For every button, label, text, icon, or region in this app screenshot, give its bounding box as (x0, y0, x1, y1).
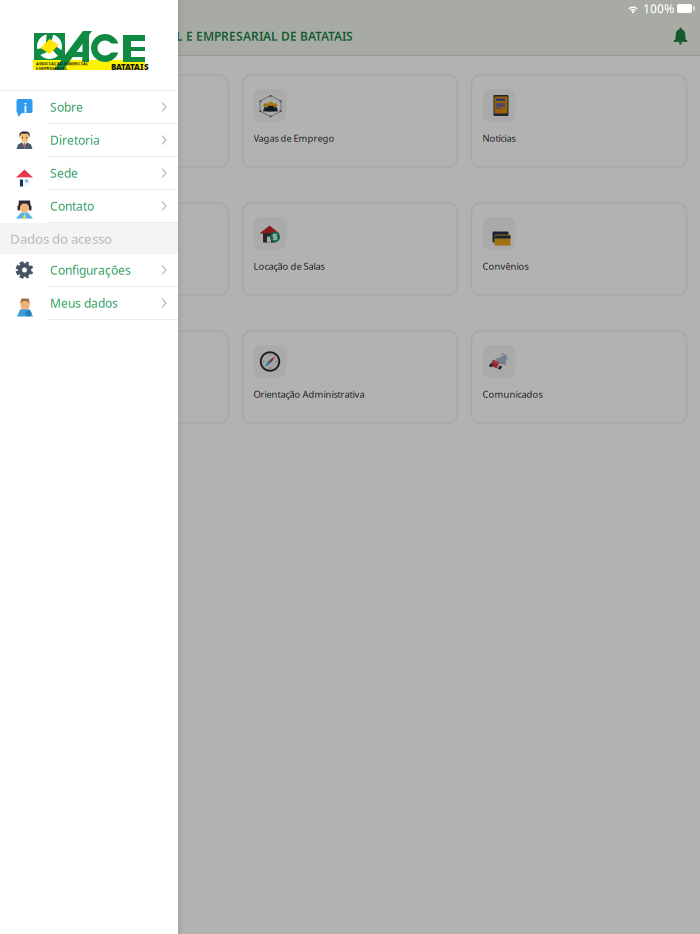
staticText: Orientação Administrativa (253, 388, 364, 400)
button[interactable]: Vagas de Emprego (242, 75, 457, 167)
staticText: 100% (643, 0, 674, 16)
button[interactable]: Serviços (13, 203, 228, 295)
button[interactable]: Notícias (471, 75, 686, 167)
button[interactable]: i (0, 91, 178, 124)
button[interactable]: Associados (13, 75, 228, 167)
button[interactable]: Orientação Administrativa (242, 331, 457, 423)
button[interactable]: Meus dados (0, 287, 178, 320)
button[interactable]: Sede (0, 157, 178, 190)
button[interactable]: Configurações (0, 254, 178, 287)
staticText: i (23, 100, 27, 116)
staticText: ASSOCIAÇÃO COMERCIAL (36, 61, 88, 66)
button[interactable]: Convênios (471, 203, 686, 295)
button[interactable]: Comunicados (471, 331, 686, 423)
button[interactable]: Diretoria (0, 124, 178, 157)
staticText: Associados (24, 132, 71, 144)
staticText: Vagas de Emprego (253, 132, 334, 144)
staticText: Meus dados (50, 295, 118, 311)
button[interactable]: Locação de Salas (242, 203, 457, 295)
staticText: Sobre (50, 99, 83, 115)
staticText: ASSOCIAÇÃO COMERCIAL E EMPRESARIAL DE BA… (35, 28, 353, 44)
staticText: Serviços (24, 260, 59, 272)
staticText: Diretoria (50, 132, 100, 148)
button[interactable]: Notificações (664, 18, 697, 53)
staticText: Configurações (50, 262, 131, 278)
staticText: Dados do acesso (10, 230, 112, 247)
staticText: BATATAIS (111, 61, 149, 72)
button[interactable]: Agenda (13, 331, 228, 423)
staticText: E EMPRESARIAL (36, 65, 67, 71)
staticText: Contato (50, 198, 94, 214)
staticText: Comunicados (482, 388, 542, 400)
staticText: Locação de Salas (253, 260, 324, 272)
button[interactable]: Contato (0, 190, 178, 223)
staticText: Convênios (482, 260, 528, 272)
staticText: Sede (50, 165, 78, 181)
staticText: Notícias (482, 132, 515, 144)
